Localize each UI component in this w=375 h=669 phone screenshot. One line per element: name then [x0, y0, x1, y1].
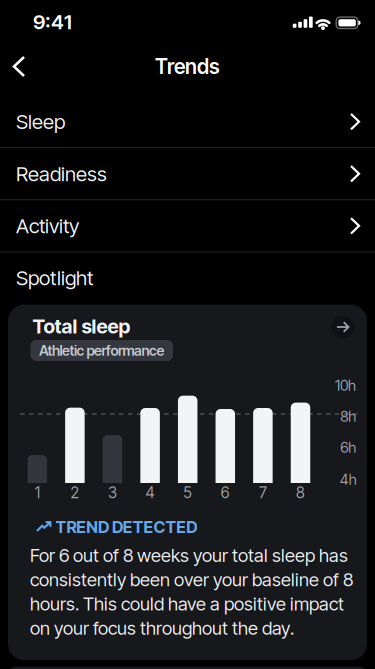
staticText: 2 — [70, 483, 79, 502]
staticText: 4h — [340, 471, 357, 488]
button[interactable]: Sleep — [0, 96, 375, 147]
button[interactable]: Readiness — [0, 148, 375, 199]
staticText: hours. This could have a positive impact — [30, 593, 344, 615]
staticText: TREND DETECTED — [55, 517, 197, 537]
button[interactable]: Back — [0, 53, 44, 80]
staticText: 8h — [340, 408, 356, 425]
staticText: For 6 out of 8 weeks your total sleep ha… — [30, 544, 348, 566]
button[interactable]: Total sleep — [8, 305, 367, 660]
staticText: 6 — [221, 483, 230, 502]
staticText: Total sleep — [32, 314, 130, 338]
staticText: Activity — [16, 213, 79, 238]
staticText: Sleep — [16, 109, 65, 134]
staticText: 5 — [183, 483, 192, 502]
staticText: Trends — [155, 54, 220, 79]
staticText: 1 — [35, 483, 40, 502]
staticText: Readiness — [16, 161, 107, 186]
staticText: 6h — [340, 439, 356, 456]
staticText: Spotlight — [16, 266, 93, 290]
button[interactable]: Activity — [0, 200, 375, 251]
staticText: 9:41 — [33, 9, 72, 34]
staticText: 4 — [146, 483, 155, 502]
staticText: 7 — [259, 483, 267, 502]
staticText: 10h — [335, 377, 356, 394]
staticText: 8 — [296, 483, 305, 502]
staticText: consistently been over your baseline of … — [30, 568, 353, 591]
staticText: on your focus throughout the day. — [30, 617, 294, 639]
staticText: 3 — [108, 483, 117, 502]
staticText: Athletic performance — [39, 342, 164, 359]
